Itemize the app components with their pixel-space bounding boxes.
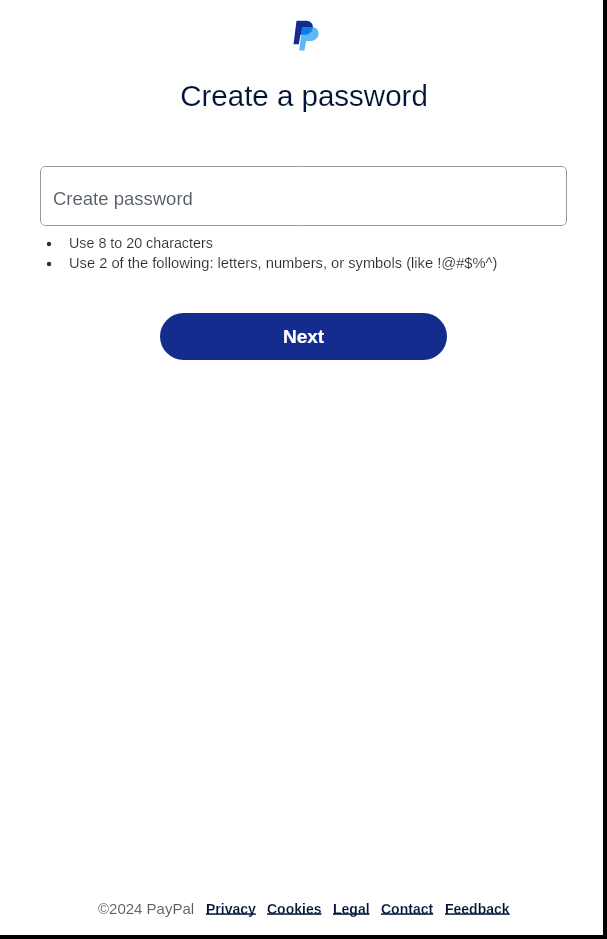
staticText: Create a password [180,79,428,112]
staticText: Next [283,326,325,347]
staticText: Use 8 to 20 characters [69,235,213,251]
button[interactable]: Feedback [445,901,510,917]
button[interactable]: Contact [381,901,434,917]
staticText: Use 2 of the following: letters, numbers… [69,255,498,271]
staticText: ©2024 PayPal [98,900,195,917]
button[interactable]: Cookies [267,901,322,917]
staticText: Create password [53,188,193,209]
button[interactable]: Privacy [206,901,256,917]
button[interactable]: Legal [333,901,370,917]
button[interactable]: Next [160,313,447,360]
button[interactable]: Create password [40,166,567,226]
